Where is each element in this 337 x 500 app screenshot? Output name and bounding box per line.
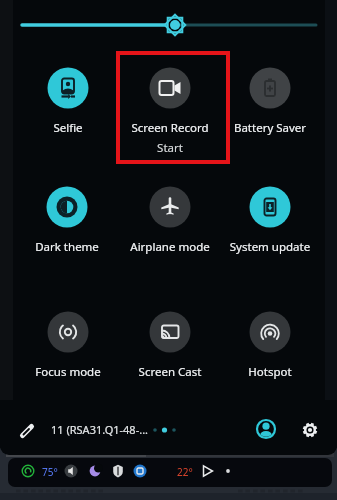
staticText: Hotspot [216,364,324,380]
button[interactable]: Focus mode [14,311,122,380]
staticText: Airplane mode [116,239,224,255]
button[interactable]: Hotspot [216,311,324,380]
button[interactable]: Battery Saver [216,67,324,136]
button[interactable]: System update [216,186,324,255]
staticText: Battery Saver [216,120,324,136]
staticText: Screen Record [116,120,224,136]
button[interactable]: Screen Cast [116,311,224,380]
button[interactable] [252,415,280,443]
staticText: Dark theme [13,239,121,255]
staticText: 22° [177,465,193,479]
button[interactable]: Selfie [14,67,122,136]
staticText: Selfie [14,120,122,136]
button[interactable]: Dark theme [13,186,121,255]
button[interactable]: Airplane mode [116,186,224,255]
staticText: Focus mode [14,364,122,380]
button[interactable] [298,416,324,442]
staticText: 11 (RSA31.Q1-48-... [51,422,149,437]
staticText: 75° [42,465,58,479]
button[interactable]: Screen Record [116,67,224,156]
button[interactable] [16,418,40,442]
staticText: System update [216,239,324,255]
staticText: Start [116,140,224,156]
staticText: Screen Cast [116,364,224,380]
button[interactable] [18,11,320,39]
